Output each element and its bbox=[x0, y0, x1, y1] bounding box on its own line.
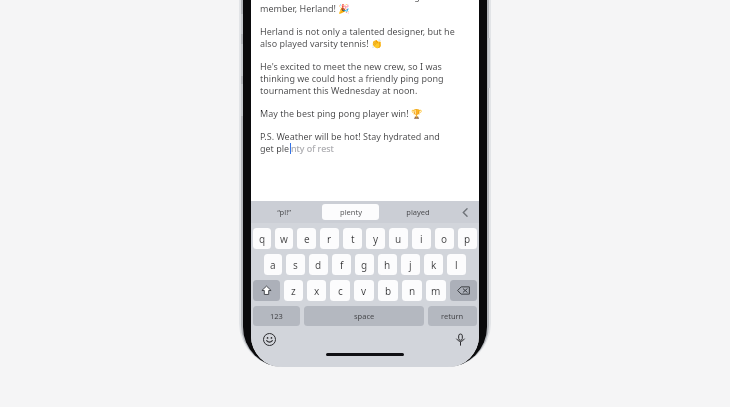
button[interactable]: w bbox=[275, 228, 293, 249]
staticText: t bbox=[351, 232, 355, 246]
button[interactable]: s bbox=[286, 254, 305, 275]
button[interactable]: b bbox=[378, 280, 398, 301]
button[interactable]: “pl!” bbox=[256, 204, 312, 220]
button[interactable]: space bbox=[304, 306, 424, 326]
button[interactable]: n bbox=[402, 280, 422, 301]
staticText: tournament this Wednesday at noon. bbox=[260, 84, 418, 96]
staticText: I'm excited to welcome our new Design Te… bbox=[260, 0, 451, 2]
staticText: f bbox=[340, 258, 344, 272]
button[interactable]: c bbox=[330, 280, 350, 301]
staticText: p bbox=[464, 232, 471, 246]
staticText: z bbox=[291, 284, 296, 298]
staticText: c bbox=[338, 284, 343, 298]
button[interactable]: o bbox=[435, 228, 454, 249]
staticText: l bbox=[455, 258, 458, 272]
button[interactable]: i bbox=[412, 228, 431, 249]
staticText: member, Herland! 🎉 bbox=[260, 2, 350, 14]
button[interactable]: v bbox=[354, 280, 374, 301]
button[interactable]: Emoji keyboard bbox=[262, 332, 277, 347]
button[interactable]: r bbox=[320, 228, 339, 249]
button[interactable]: y bbox=[366, 228, 385, 249]
button[interactable]: a bbox=[264, 254, 282, 275]
button[interactable]: u bbox=[389, 228, 408, 249]
staticText: d bbox=[315, 258, 322, 272]
staticText: x bbox=[314, 284, 320, 298]
staticText: r bbox=[327, 232, 332, 246]
button[interactable]: e bbox=[297, 228, 316, 249]
button[interactable]: l bbox=[447, 254, 466, 275]
staticText: g bbox=[361, 258, 368, 272]
staticText: w bbox=[280, 232, 288, 246]
staticText: u bbox=[395, 232, 402, 246]
button[interactable]: Collapse predictions bbox=[451, 201, 479, 223]
button[interactable]: g bbox=[355, 254, 374, 275]
staticText: o bbox=[441, 232, 448, 246]
staticText: v bbox=[361, 284, 367, 298]
button[interactable]: h bbox=[378, 254, 397, 275]
staticText: q bbox=[259, 232, 266, 246]
button[interactable]: m bbox=[426, 280, 446, 301]
button[interactable]: x bbox=[307, 280, 326, 301]
button[interactable]: Dictation bbox=[453, 332, 468, 347]
staticText: Herland is not only a talented designer,… bbox=[260, 25, 455, 37]
staticText: He's excited to meet the new crew, so I … bbox=[260, 60, 442, 72]
staticText: h bbox=[384, 258, 391, 272]
staticText: y bbox=[373, 232, 379, 246]
button[interactable]: plenty bbox=[322, 204, 379, 220]
staticText: space bbox=[354, 311, 375, 321]
staticText: n bbox=[409, 284, 416, 298]
staticText: played bbox=[406, 207, 430, 217]
button[interactable]: j bbox=[401, 254, 420, 275]
button[interactable]: Backspace bbox=[450, 280, 477, 301]
button[interactable]: p bbox=[458, 228, 477, 249]
staticText: s bbox=[293, 258, 298, 272]
staticText: 123 bbox=[270, 311, 283, 321]
staticText: j bbox=[409, 258, 412, 272]
button[interactable]: 123 bbox=[253, 306, 300, 326]
staticText: i bbox=[420, 232, 423, 246]
staticText: nty of rest bbox=[291, 142, 334, 154]
staticText: k bbox=[431, 258, 437, 272]
staticText: a bbox=[270, 258, 276, 272]
staticText: get ple bbox=[260, 142, 290, 154]
button[interactable]: d bbox=[309, 254, 328, 275]
staticText: return bbox=[441, 311, 464, 321]
staticText: b bbox=[385, 284, 392, 298]
button[interactable]: k bbox=[424, 254, 443, 275]
staticText: P.S. Weather will be hot! Stay hydrated … bbox=[260, 130, 440, 142]
button[interactable]: played bbox=[389, 204, 446, 220]
button[interactable]: return bbox=[428, 306, 477, 326]
button[interactable]: z bbox=[284, 280, 303, 301]
staticText: “pl!” bbox=[277, 207, 291, 217]
button[interactable]: t bbox=[343, 228, 362, 249]
staticText: e bbox=[304, 232, 310, 246]
staticText: also played varsity tennis! 👏 bbox=[260, 37, 383, 49]
button[interactable]: f bbox=[332, 254, 351, 275]
staticText: m bbox=[431, 284, 441, 298]
button[interactable]: Shift bbox=[253, 280, 280, 301]
button[interactable]: q bbox=[253, 228, 271, 249]
staticText: plenty bbox=[340, 207, 362, 217]
staticText: thinking we could host a friendly ping p… bbox=[260, 72, 444, 84]
staticText: May the best ping pong player win! 🏆 bbox=[260, 107, 423, 119]
